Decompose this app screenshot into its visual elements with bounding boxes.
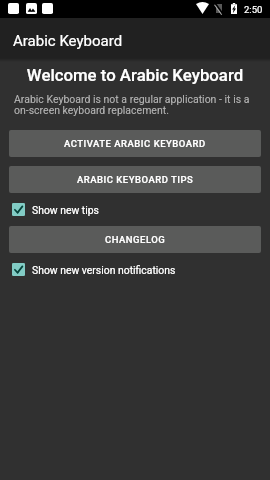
button[interactable]: ACTIVATE ARABIC KEYBOARD (9, 130, 261, 157)
staticText: Arabic Keyboard (13, 32, 123, 50)
staticText: Welcome to Arabic Keyboard (0, 65, 270, 85)
other: No SIM card (216, 4, 222, 13)
staticText: Show new version notifications (32, 264, 176, 276)
other: Battery charging (231, 3, 237, 14)
staticText: CHANGELOG (105, 234, 166, 245)
button[interactable]: Show new tips (0, 202, 270, 217)
staticText: 2:50 (244, 4, 263, 15)
button[interactable]: ARABIC KEYBOARD TIPS (9, 166, 261, 193)
staticText: ACTIVATE ARABIC KEYBOARD (64, 138, 206, 149)
button[interactable]: Show new version notifications (0, 262, 270, 277)
other: Wi-Fi (196, 4, 209, 14)
button[interactable]: CHANGELOG (9, 226, 261, 253)
staticText: ARABIC KEYBOARD TIPS (77, 174, 194, 185)
staticText: Show new tips (32, 204, 99, 216)
staticText: Arabic Keyboard is not a regular applica… (14, 93, 256, 117)
